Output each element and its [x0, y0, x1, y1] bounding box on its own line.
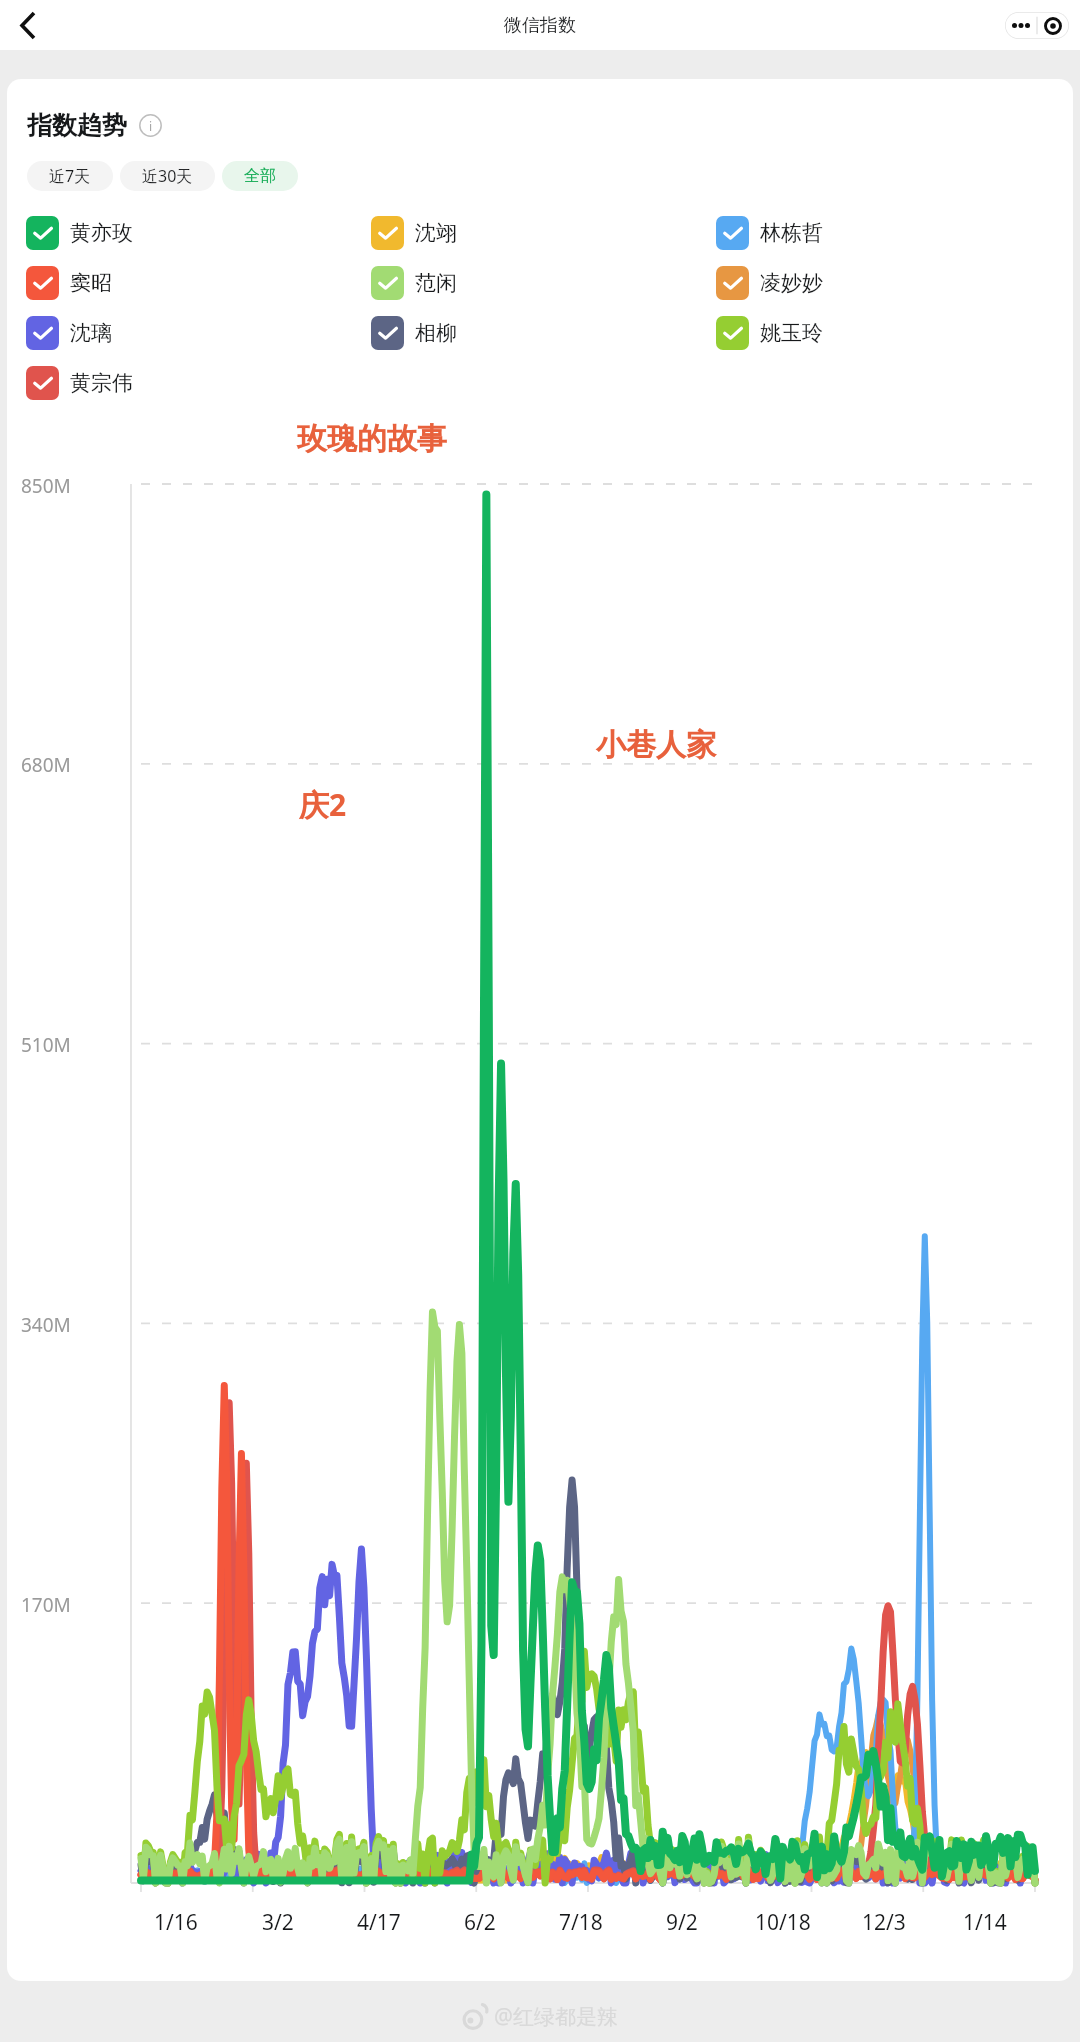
staticText: 微信指数 — [504, 14, 576, 37]
staticText: 9/2 — [666, 1908, 698, 1937]
staticText: 姚玉玲 — [760, 320, 823, 346]
staticText: 相柳 — [415, 320, 457, 346]
button[interactable]: Back — [5, 3, 49, 47]
staticText: 3/2 — [262, 1908, 294, 1937]
staticText: 510M — [21, 1032, 71, 1058]
staticText: 庆2 — [299, 784, 347, 825]
staticText: 850M — [21, 473, 71, 499]
staticText: 170M — [21, 1592, 71, 1618]
button[interactable]: 沈璃 — [26, 316, 112, 350]
button[interactable]: More options — [1005, 12, 1037, 39]
staticText: 玫瑰的故事 — [297, 420, 447, 458]
button[interactable]: 林栋哲 — [716, 216, 823, 250]
staticText: 范闲 — [415, 270, 457, 296]
staticText: 沈翊 — [415, 220, 457, 246]
button[interactable]: 相柳 — [371, 316, 457, 350]
button[interactable]: 范闲 — [371, 266, 457, 300]
button[interactable]: 近30天 — [120, 161, 215, 191]
staticText: 6/2 — [464, 1908, 496, 1937]
button[interactable]: Close — [1037, 12, 1069, 39]
button[interactable]: 全部 — [222, 161, 298, 191]
button[interactable]: 黄亦玫 — [26, 216, 133, 250]
staticText: 黄亦玫 — [70, 220, 133, 246]
staticText: 小巷人家 — [596, 726, 716, 764]
staticText: 林栋哲 — [760, 220, 823, 246]
staticText: 680M — [21, 752, 71, 778]
staticText: 10/18 — [755, 1908, 811, 1937]
staticText: 凌妙妙 — [760, 270, 823, 296]
staticText: 1/14 — [963, 1908, 1007, 1937]
staticText: 近30天 — [142, 165, 193, 187]
staticText: 窦昭 — [70, 270, 112, 296]
button[interactable]: 黄宗伟 — [26, 366, 133, 400]
button[interactable]: 凌妙妙 — [716, 266, 823, 300]
staticText: 340M — [21, 1312, 71, 1338]
staticText: 沈璃 — [70, 320, 112, 346]
staticText: 12/3 — [862, 1908, 906, 1937]
button[interactable]: 窦昭 — [26, 266, 112, 300]
button[interactable]: 姚玉玲 — [716, 316, 823, 350]
staticText: 4/17 — [357, 1908, 401, 1937]
staticText: @红绿都是辣 — [494, 2002, 618, 2031]
staticText: 7/18 — [559, 1908, 603, 1937]
staticText: 近7天 — [49, 165, 91, 187]
staticText: 指数趋势 — [27, 110, 127, 141]
button[interactable]: 沈翊 — [371, 216, 457, 250]
staticText: 黄宗伟 — [70, 370, 133, 396]
staticText: 全部 — [244, 166, 276, 186]
button[interactable]: 近7天 — [27, 161, 113, 191]
button[interactable]: Info — [139, 114, 162, 137]
staticText: i — [149, 118, 153, 134]
staticText: 1/16 — [154, 1908, 198, 1937]
